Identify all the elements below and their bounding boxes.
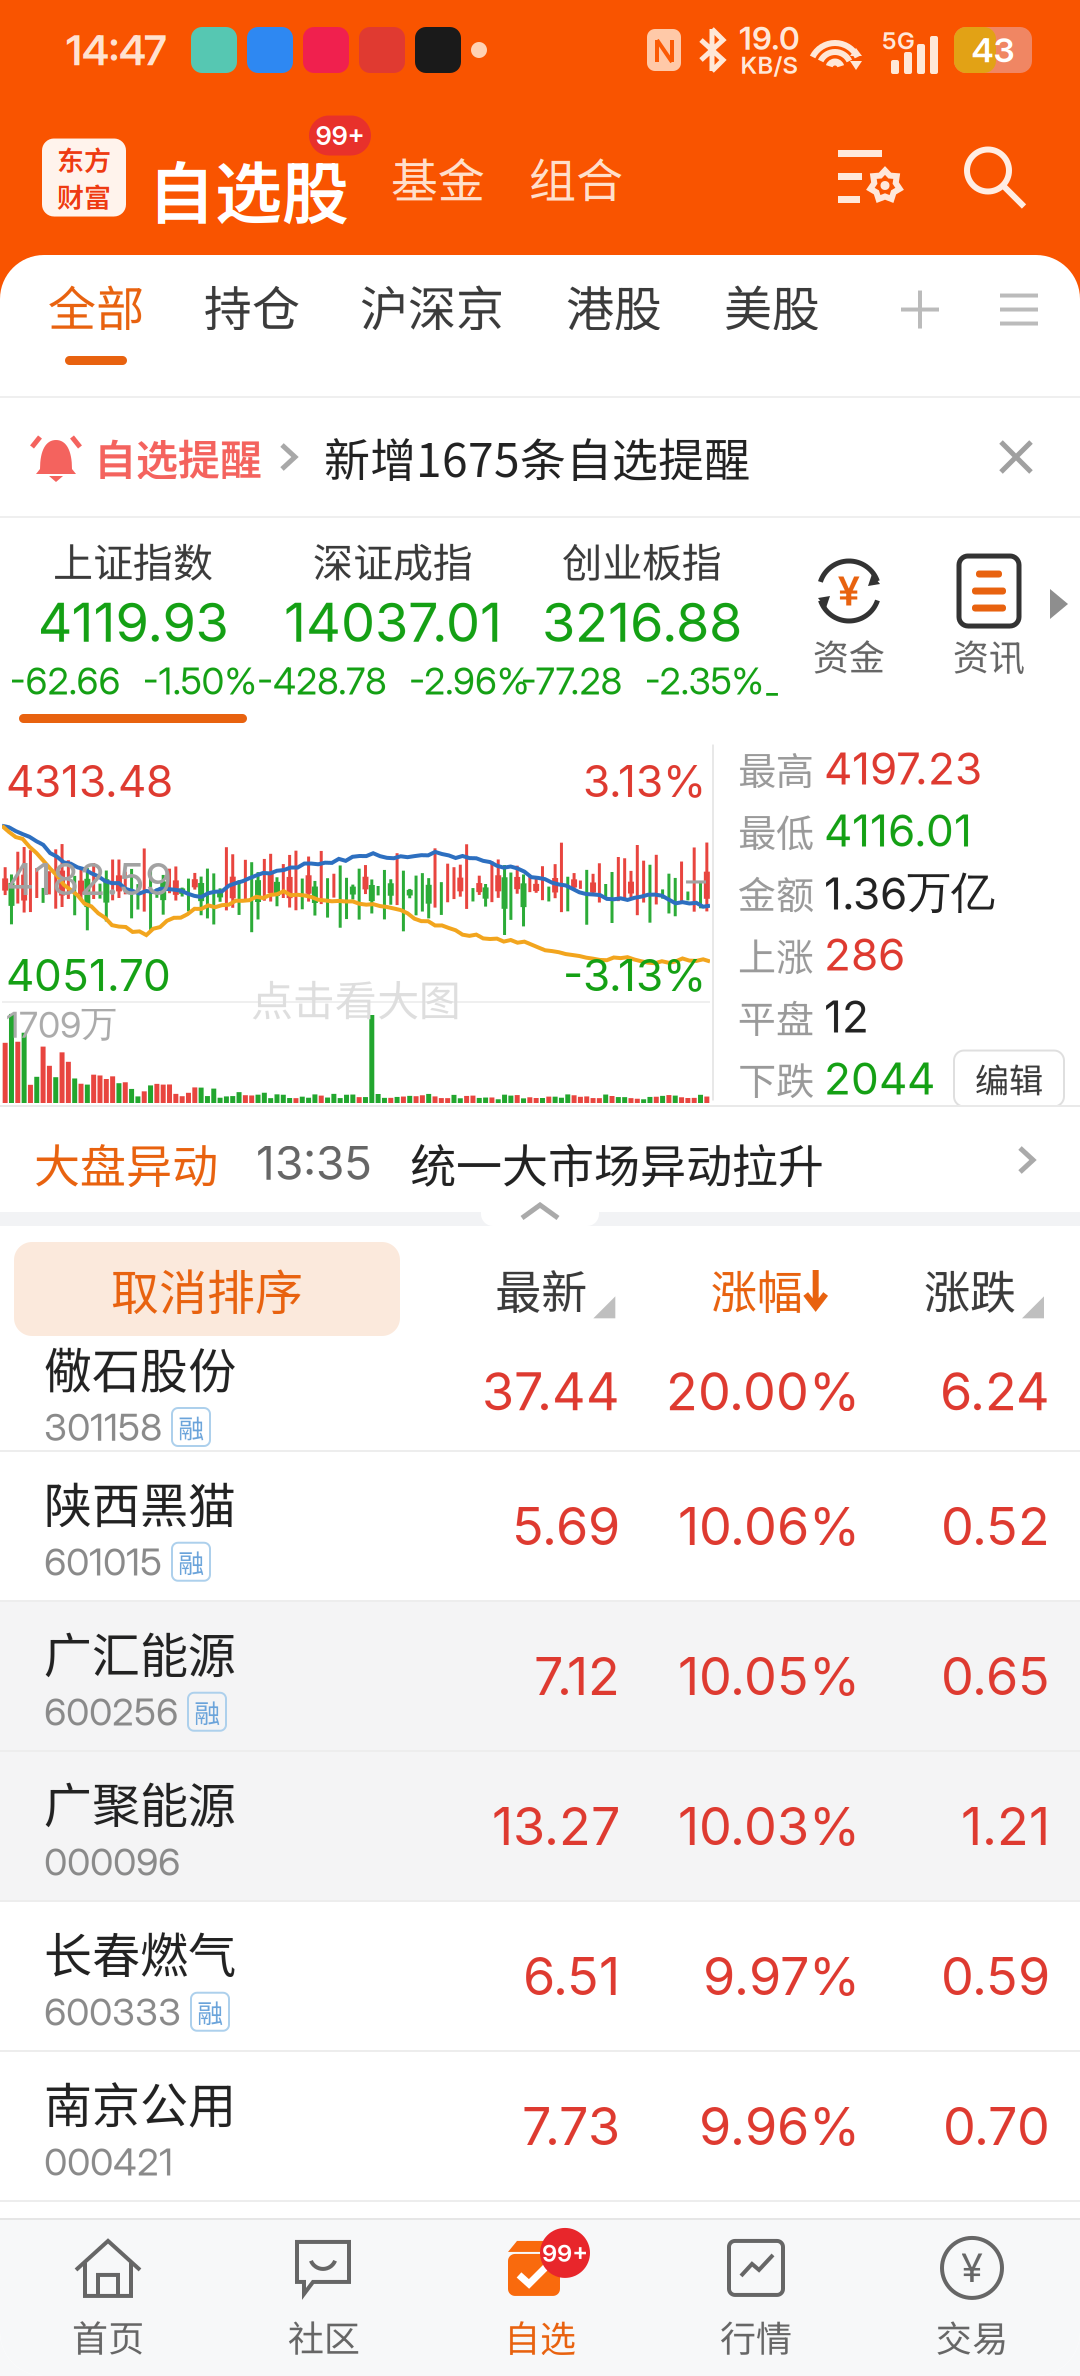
button[interactable]: 港股 [504,256,662,394]
staticText: 儆石股份 [44,1332,236,1402]
button[interactable]: 持仓 [144,256,300,394]
staticText: 7.12 [534,1644,620,1707]
staticText: 4197.23 [824,742,982,795]
staticText: 编辑 [975,1054,1043,1103]
button[interactable]: 深证成指 [262,518,524,740]
staticText: 自选提醒 [94,427,262,487]
staticText: 财富 [57,176,111,216]
staticText: 43 [971,29,1014,70]
button[interactable]: 社区 [216,2220,432,2376]
staticText: 深证成指 [313,531,473,589]
staticText: 金额 [738,865,814,920]
staticText: 融 [197,1993,223,2030]
button[interactable]: ¥ [792,518,906,740]
button[interactable]: 沪深京 [300,256,504,394]
staticText: 涨跌 [924,1256,1016,1322]
staticText: 0.52 [941,1494,1050,1557]
staticText: 沪深京 [360,270,504,340]
staticText: 3216.88 [542,589,742,655]
staticText: 资讯 [953,629,1025,681]
staticText: 组合 [529,143,623,212]
staticText: 10.06% [678,1494,860,1557]
staticText: -428.78 [257,659,387,703]
button[interactable]: Manage [962,290,1080,360]
button[interactable]: ¥ [864,2220,1080,2376]
button[interactable]: 涨跌 [924,1256,1044,1322]
staticText: 上证指数 [53,531,213,589]
button[interactable]: 南京公用 [0,2052,1080,2200]
staticText: 000421 [44,2139,173,2185]
button[interactable]: 涨幅 [711,1256,829,1322]
staticText: 6.24 [940,1360,1050,1423]
staticText: 4116.01 [824,804,972,857]
staticText: 持仓 [204,270,300,340]
button[interactable]: 广汇能源 [0,1602,1080,1750]
button[interactable]: 全部 [0,256,144,394]
staticText: 20.00% [666,1360,860,1423]
button[interactable]: 最新 [495,1256,615,1322]
staticText: 13.27 [492,1794,620,1857]
button[interactable]: 长春燃气 [0,1902,1080,2050]
button[interactable]: 编辑 [954,1050,1064,1106]
staticText: 取消排序 [111,1254,303,1324]
button[interactable]: 儆石股份 [0,1345,1080,1450]
staticText: ¥ [961,2244,982,2292]
staticText: 4051.70 [6,948,171,1002]
staticText: 统一大市场异动拉升 [410,1130,824,1196]
staticText: 最低 [738,803,814,858]
button[interactable]: 美股 [662,256,820,394]
staticText: 600333 [44,1989,181,2035]
staticText: 最高 [738,741,814,796]
staticText: 19.0 [739,19,800,57]
button[interactable]: 基金 [371,129,485,225]
button[interactable]: 创业板指 [524,518,760,740]
button[interactable]: Search [904,144,1028,210]
button[interactable]: 取消排序 [0,1242,400,1336]
button[interactable]: Add [900,289,962,361]
button[interactable]: 大盘异动 [0,1107,1080,1219]
staticText: 长春燃气 [44,1917,236,1987]
staticText: 大盘异动 [34,1130,218,1196]
button[interactable]: 上证指数 [4,518,262,740]
staticText: - [764,670,780,715]
staticText: 行情 [720,2310,792,2362]
button[interactable]: Settings [838,148,904,206]
staticText: 首页 [72,2310,144,2362]
staticText: 资金 [813,629,885,681]
staticText: ¥ [838,567,860,615]
button[interactable]: 点击看大图 [0,740,712,1105]
staticText: 2044 [824,1052,935,1105]
staticText: 全部 [48,270,144,340]
staticText: 下跌 [738,1051,814,1106]
staticText: 14:47 [66,25,167,75]
staticText: 平盘 [738,989,814,1044]
staticText: 创业板指 [562,531,722,589]
button[interactable]: 99+ [432,2220,648,2376]
staticText: 4119.93 [37,589,228,655]
staticText: 0.59 [941,1944,1050,2007]
button[interactable]: 陕西黑猫 [0,1452,1080,1600]
staticText: 广汇能源 [44,1617,236,1687]
staticText: 5.69 [512,1494,620,1557]
staticText: 广聚能源 [44,1767,236,1837]
staticText: 9.97% [703,1944,860,2007]
button[interactable]: 自选提醒 [0,398,1080,516]
button[interactable]: Collapse [481,1212,599,1240]
staticText: 3.13% [583,754,706,808]
button[interactable]: 组合 [485,129,623,225]
button[interactable]: 资讯 [906,518,1046,740]
staticText: 12 [824,990,869,1043]
button[interactable]: 广聚能源 [0,1752,1080,1900]
staticText: -3.13% [563,948,706,1002]
staticText: -62.66 [9,659,120,703]
staticText: 000096 [44,1839,180,1885]
staticText: – [686,855,706,903]
staticText: 涨幅 [711,1256,803,1322]
staticText: -1.50% [142,659,256,703]
staticText: 4313.48 [6,754,173,808]
staticText: 600256 [44,1689,178,1735]
staticText: 1709万 [6,1001,117,1047]
button[interactable]: 首页 [0,2220,216,2376]
button[interactable]: 行情 [648,2220,864,2376]
staticText: 37.44 [482,1360,620,1423]
